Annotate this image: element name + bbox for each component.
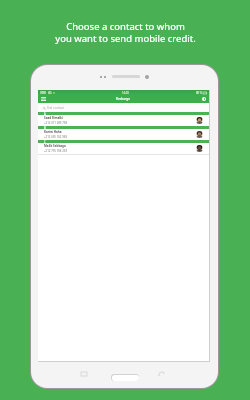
staticText: +212 671 289 798	[44, 121, 67, 125]
staticText: Karim Haha	[44, 130, 62, 134]
staticText: 14:20	[122, 91, 129, 95]
staticText: +212 655 162 948	[44, 135, 67, 139]
staticText: B	[44, 126, 46, 129]
staticText: Saad Elmalki	[44, 116, 63, 120]
button[interactable]: Karim Haha	[38, 129, 209, 140]
staticText: 4G	[48, 91, 52, 95]
staticText: +212 776 768 292	[44, 149, 67, 153]
button[interactable]: Menu	[38, 95, 48, 103]
staticText: A	[44, 112, 46, 115]
button[interactable]: Find a contact	[38, 103, 209, 112]
button[interactable]: Malik Sebbaga	[38, 143, 209, 154]
button[interactable]: Saad Elmalki	[38, 115, 209, 126]
staticText: Choose a contact to whom you want to sen…	[55, 20, 196, 45]
button[interactable]: Recent apps	[77, 367, 91, 381]
staticText: C	[44, 140, 46, 143]
staticText: Malik Sebbaga	[44, 144, 66, 148]
button[interactable]: Account info	[198, 95, 209, 103]
button[interactable]: Back	[154, 367, 168, 381]
staticText: INWI	[40, 91, 47, 95]
staticText: Recharge	[116, 97, 130, 101]
staticText: 88 %	[196, 91, 202, 95]
staticText: Find a contact	[47, 106, 65, 110]
button[interactable]: Home	[111, 374, 139, 381]
